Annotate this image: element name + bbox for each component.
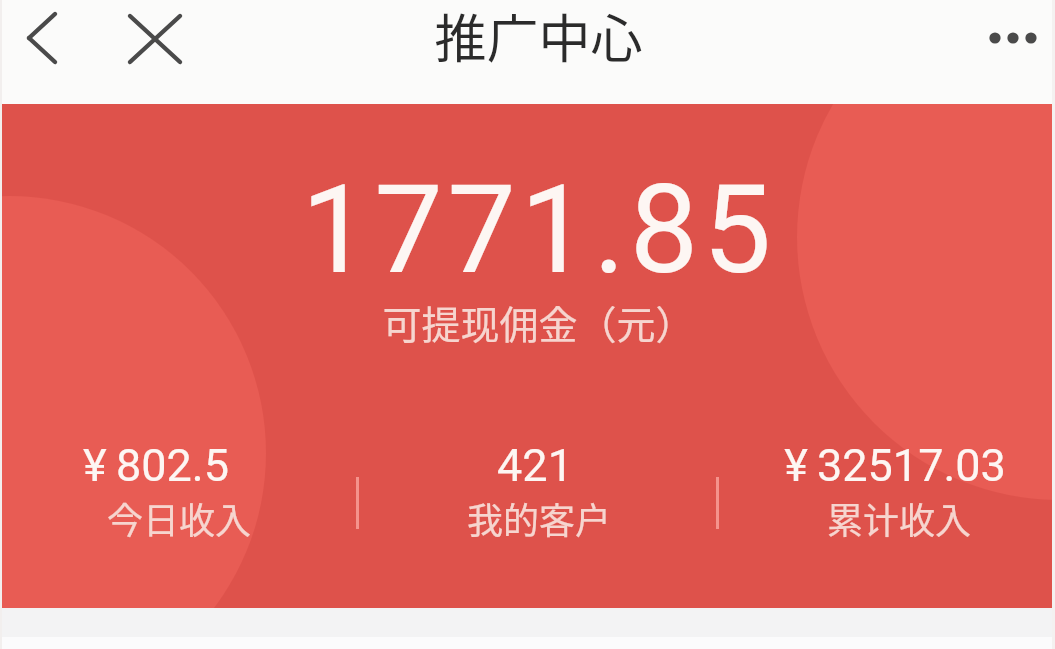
staticText: 421 bbox=[355, 439, 715, 492]
staticText: 1771.85 bbox=[11, 159, 1055, 302]
staticText: ¥ 802.5 bbox=[0, 439, 336, 492]
button[interactable]: More options bbox=[960, 0, 1055, 78]
button[interactable]: ¥ 802.5 bbox=[0, 432, 359, 544]
button[interactable]: ¥ 32517.03 bbox=[719, 432, 1055, 544]
staticText: 我的客户 bbox=[359, 492, 719, 544]
button[interactable]: Close bbox=[98, 0, 212, 78]
staticText: 可提现佣金（元） bbox=[11, 294, 1055, 350]
button[interactable]: 421 bbox=[359, 432, 719, 544]
staticText: ¥ 32517.03 bbox=[715, 439, 1055, 492]
staticText: 推广中心 bbox=[11, 0, 1055, 73]
staticText: 今日收入 bbox=[0, 492, 359, 544]
button[interactable]: Back bbox=[0, 0, 84, 78]
staticText: 累计收入 bbox=[719, 492, 1055, 544]
